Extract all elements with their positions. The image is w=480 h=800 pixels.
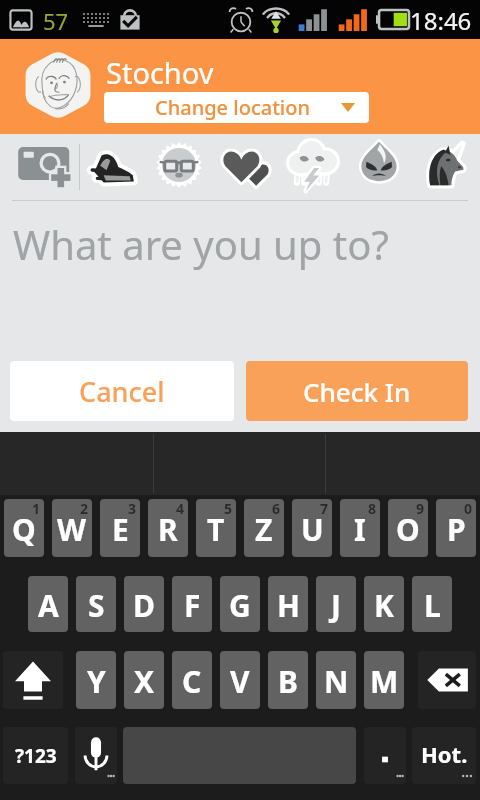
staticText: H: [277, 585, 300, 626]
staticText: Check In: [303, 374, 411, 409]
button[interactable]: O: [388, 499, 428, 557]
button[interactable]: J: [316, 576, 356, 632]
staticText: 3: [128, 499, 137, 518]
staticText: K: [374, 585, 394, 626]
button[interactable]: [364, 727, 406, 784]
button[interactable]: V: [220, 651, 260, 709]
staticText: F: [184, 585, 201, 626]
staticText: 7: [320, 499, 329, 518]
staticText: J: [331, 585, 341, 626]
button[interactable]: X: [124, 651, 164, 709]
staticText: 18:46: [410, 4, 472, 37]
button[interactable]: T: [196, 499, 236, 557]
button[interactable]: Shoe: [86, 144, 138, 196]
button[interactable]: Y: [76, 651, 116, 709]
staticText: 9: [416, 499, 425, 518]
staticText: 1: [32, 499, 41, 518]
button[interactable]: Cancel: [10, 361, 234, 421]
button[interactable]: Q: [4, 499, 44, 557]
staticText: 4: [176, 499, 185, 518]
staticText: R: [158, 509, 178, 550]
button[interactable]: D: [124, 576, 164, 632]
staticText: Q: [12, 509, 36, 550]
button[interactable]: R: [148, 499, 188, 557]
button[interactable]: B: [268, 651, 308, 709]
staticText: Change location: [155, 94, 310, 121]
staticText: 5: [224, 499, 233, 518]
button[interactable]: G: [220, 576, 260, 632]
staticText: What are you up to?: [13, 217, 389, 271]
staticText: U: [301, 509, 324, 550]
staticText: 0: [464, 499, 473, 518]
button[interactable]: Hearts: [223, 144, 269, 190]
staticText: Stochov: [106, 53, 214, 92]
staticText: Y: [87, 661, 106, 702]
button[interactable]: Sun: [155, 141, 203, 189]
button[interactable]: Unicorn: [421, 143, 467, 189]
staticText: 57: [43, 6, 69, 36]
staticText: C: [182, 661, 202, 702]
staticText: O: [396, 509, 420, 550]
button[interactable]: Change location: [104, 92, 369, 123]
button[interactable]: U: [292, 499, 332, 557]
button[interactable]: Storm: [287, 139, 339, 191]
button[interactable]: ?123: [3, 727, 68, 784]
button[interactable]: Add photo: [14, 135, 74, 195]
staticText: S: [88, 585, 105, 626]
button[interactable]: Voice input: [75, 727, 117, 784]
button[interactable]: W: [52, 499, 92, 557]
button[interactable]: L: [412, 576, 452, 632]
button[interactable]: N: [316, 651, 356, 709]
staticText: L: [424, 585, 441, 626]
staticText: N: [324, 661, 349, 702]
button[interactable]: Backspace: [418, 651, 476, 709]
staticText: Hot.: [421, 739, 468, 769]
button[interactable]: H: [268, 576, 308, 632]
staticText: X: [134, 661, 155, 702]
staticText: W: [57, 509, 87, 550]
staticText: B: [278, 661, 298, 702]
button[interactable]: S: [76, 576, 116, 632]
staticText: G: [229, 585, 251, 626]
button[interactable]: Hot.: [412, 727, 476, 784]
staticText: V: [230, 661, 250, 702]
staticText: Cancel: [79, 373, 165, 410]
button[interactable]: P: [436, 499, 476, 557]
button[interactable]: M: [364, 651, 404, 709]
staticText: D: [133, 585, 155, 626]
button[interactable]: K: [364, 576, 404, 632]
staticText: I: [354, 509, 366, 550]
button[interactable]: Angry: [358, 140, 400, 182]
button[interactable]: A: [28, 576, 68, 632]
staticText: T: [207, 509, 225, 550]
staticText: E: [112, 509, 129, 550]
button[interactable]: I: [340, 499, 380, 557]
staticText: 2: [80, 499, 89, 518]
button[interactable]: C: [172, 651, 212, 709]
staticText: M: [370, 661, 399, 702]
button[interactable]: Z: [244, 499, 284, 557]
button[interactable]: Shift: [3, 651, 63, 709]
staticText: A: [38, 585, 59, 626]
staticText: ?123: [15, 743, 57, 769]
button[interactable]: E: [100, 499, 140, 557]
staticText: 8: [368, 499, 377, 518]
staticText: 6: [272, 499, 281, 518]
staticText: P: [447, 509, 466, 550]
button[interactable]: Check In: [246, 361, 468, 421]
staticText: Z: [255, 509, 273, 550]
button[interactable]: F: [172, 576, 212, 632]
